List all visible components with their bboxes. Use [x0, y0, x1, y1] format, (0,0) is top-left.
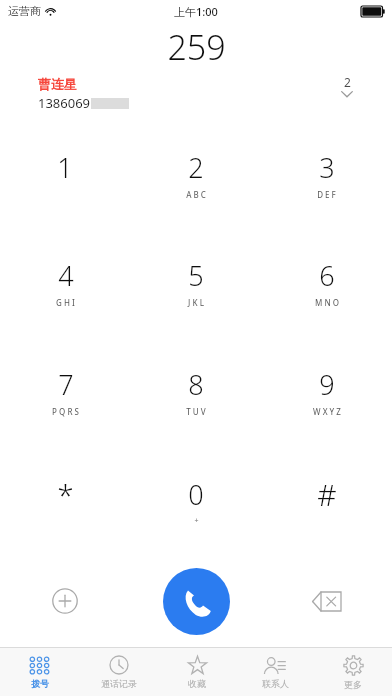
- staticText: J K L: [188, 297, 204, 308]
- button[interactable]: 联系人: [236, 648, 314, 696]
- staticText: T U V: [186, 406, 206, 417]
- staticText: 6: [319, 257, 335, 294]
- staticText: 1386069: [38, 94, 91, 112]
- staticText: 1: [57, 149, 73, 186]
- button[interactable]: 9: [261, 337, 392, 446]
- staticText: 7: [58, 366, 74, 403]
- staticText: 上午1:00: [174, 4, 218, 19]
- staticText: 更多: [344, 679, 362, 690]
- staticText: G H I: [56, 297, 75, 308]
- staticText: 4: [58, 257, 74, 294]
- button[interactable]: 通话记录: [79, 648, 158, 696]
- button[interactable]: 5: [130, 228, 261, 337]
- button[interactable]: 4: [0, 228, 130, 337]
- staticText: P Q R S: [52, 406, 79, 417]
- button[interactable]: 2: [130, 120, 261, 228]
- button[interactable]: 7: [0, 337, 130, 446]
- staticText: 拨号: [31, 678, 49, 689]
- staticText: 0: [188, 476, 204, 513]
- button[interactable]: Add contact: [43, 579, 87, 623]
- staticText: 运营商: [8, 4, 41, 18]
- staticText: A B C: [186, 189, 206, 200]
- button[interactable]: *: [0, 446, 130, 555]
- button[interactable]: Call: [163, 568, 230, 635]
- staticText: 联系人: [262, 678, 289, 689]
- button[interactable]: 收藏: [158, 648, 236, 696]
- button[interactable]: 0: [130, 446, 261, 555]
- staticText: 3: [319, 149, 335, 186]
- button[interactable]: 3: [261, 120, 392, 228]
- staticText: 259: [167, 24, 226, 70]
- staticText: *: [57, 474, 74, 515]
- button[interactable]: 8: [130, 337, 261, 446]
- staticText: 8: [188, 366, 204, 403]
- staticText: 5: [188, 257, 204, 294]
- button[interactable]: 拨号: [0, 648, 79, 696]
- staticText: M N O: [315, 297, 339, 308]
- staticText: 2: [188, 149, 204, 186]
- button[interactable]: Delete: [305, 579, 349, 623]
- staticText: D E F: [317, 189, 336, 200]
- button[interactable]: Expand SIM selection: [340, 74, 354, 98]
- staticText: 通话记录: [101, 678, 137, 689]
- staticText: +: [194, 516, 199, 526]
- staticText: 曹连星: [38, 76, 77, 92]
- staticText: 9: [319, 366, 335, 403]
- button[interactable]: #: [261, 446, 392, 555]
- button[interactable]: 更多: [314, 648, 392, 696]
- staticText: W X Y Z: [313, 406, 341, 417]
- staticText: 2: [344, 74, 351, 90]
- staticText: 收藏: [188, 678, 206, 689]
- button[interactable]: 6: [261, 228, 392, 337]
- button[interactable]: 1: [0, 120, 130, 228]
- staticText: #: [317, 474, 337, 515]
